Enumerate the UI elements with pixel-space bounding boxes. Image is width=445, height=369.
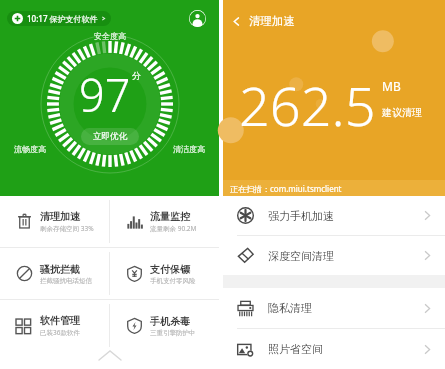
staticText: 支付保镖 [150,263,190,276]
button[interactable]: 隐私清理 [223,288,445,328]
staticText: 立即优化 [93,131,127,142]
button[interactable]: 照片省空间 [223,329,445,369]
staticText: 10:17 保护支付软件 [27,13,98,24]
staticText: 拦截骚扰电话短信 [40,277,92,285]
staticText: 安全度高 [94,31,126,41]
staticText: 清洁度高 [173,144,205,154]
button[interactable]: 立即优化 [81,128,139,145]
staticText: 清理加速 [40,210,80,223]
other: Back [232,17,241,26]
staticText: 照片省空间 [268,342,323,356]
button[interactable]: 流量监控 [110,196,219,247]
staticText: 262.5 [239,68,376,142]
staticText: 隐私清理 [268,301,312,315]
button[interactable]: 深度空间清理 [223,236,445,275]
staticText: 分 [132,70,141,81]
staticText: 强力手机加速 [268,209,334,223]
staticText: 已装36款软件 [40,328,80,337]
staticText: 深度空间清理 [268,249,334,263]
staticText: 建议清理 [382,106,422,119]
staticText: MB [382,78,401,94]
button[interactable]: Account [189,10,206,27]
button[interactable]: 软件管理 [0,300,109,351]
staticText: 正在扫描：com.miui.tsmclient [230,183,342,194]
button[interactable]: 清理加速 [0,196,109,247]
button[interactable]: 骚扰拦截 [0,248,109,299]
staticText: 手机杀毒 [150,315,190,328]
staticText: 剩余存储空间 33% [40,224,94,233]
staticText: 手机支付零风险 [150,277,196,285]
button[interactable]: 10:17 保护支付软件 [7,11,111,26]
staticText: 流畅度高 [14,144,46,154]
staticText: 流量剩余 90.2M [150,224,197,233]
button[interactable]: 支付保镖 [110,248,219,299]
button[interactable]: 手机杀毒 [110,300,219,351]
button[interactable]: Back [232,14,303,32]
staticText: 三重引擎防护中 [150,329,196,337]
staticText: 流量监控 [150,210,190,223]
button[interactable]: 强力手机加速 [223,196,445,235]
staticText: 清理加速 [249,14,295,28]
staticText: 骚扰拦截 [40,263,80,276]
staticText: 97 [79,64,131,125]
staticText: 软件管理 [40,314,80,327]
